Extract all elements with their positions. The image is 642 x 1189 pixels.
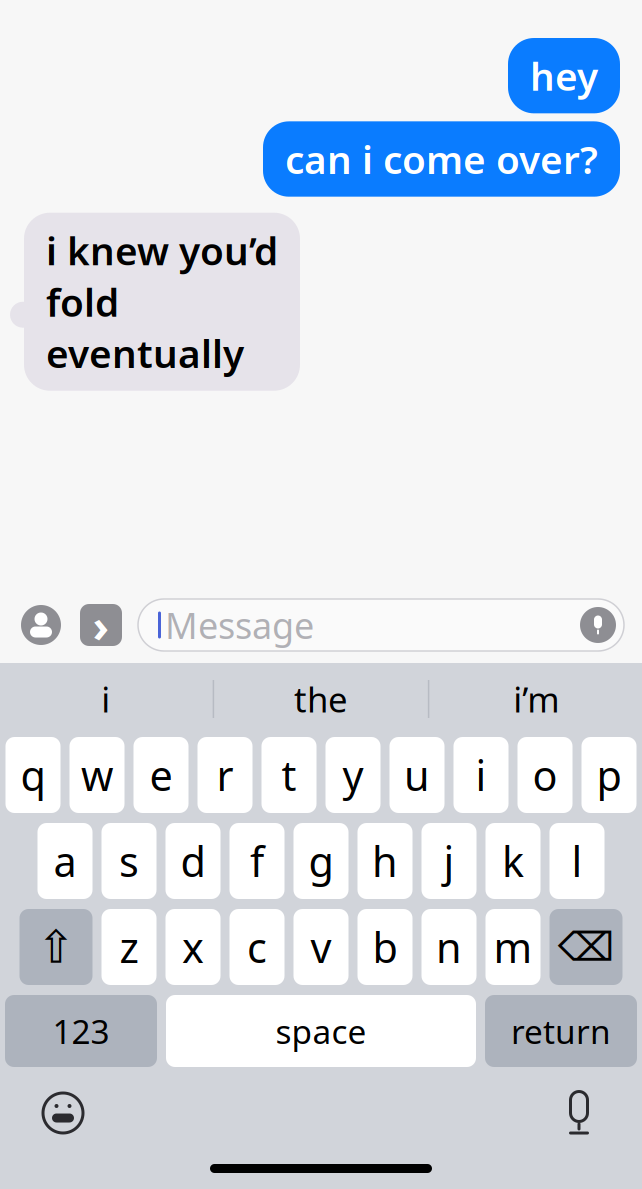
button[interactable]: i [0, 663, 213, 735]
staticText: z [119, 920, 138, 974]
staticText: u [404, 748, 430, 802]
staticText: › [92, 595, 109, 655]
staticText: l [571, 834, 582, 888]
button[interactable]: t [261, 737, 316, 813]
staticText: return [511, 1009, 611, 1053]
staticText: x [182, 920, 204, 974]
staticText: c [247, 920, 267, 974]
button[interactable]: r [197, 737, 252, 813]
staticText: g [308, 834, 333, 888]
staticText: f [250, 834, 264, 888]
staticText: t [281, 748, 296, 802]
button[interactable]: Apps [78, 599, 124, 651]
button[interactable]: m [485, 909, 540, 985]
staticText: j [443, 834, 454, 888]
staticText: i’m [513, 676, 559, 722]
button[interactable]: space [166, 995, 476, 1067]
button[interactable]: g [293, 823, 348, 899]
button[interactable]: Message field [138, 599, 624, 651]
button[interactable]: n [421, 909, 476, 985]
staticText: b [372, 920, 397, 974]
button[interactable]: i [453, 737, 508, 813]
staticText: 123 [52, 1009, 109, 1053]
staticText: the [294, 676, 348, 722]
staticText: a [53, 834, 76, 888]
button[interactable]: Emoji [31, 1081, 95, 1145]
staticText: i knew you’d fold eventually [46, 225, 278, 379]
button[interactable]: p [581, 737, 636, 813]
button[interactable]: k [485, 823, 540, 899]
button[interactable]: Delete [549, 909, 622, 985]
button[interactable]: q [5, 737, 60, 813]
staticText: hey [530, 50, 598, 101]
staticText: d [180, 834, 205, 888]
staticText: o [532, 748, 557, 802]
button[interactable]: 123 [5, 995, 157, 1067]
button[interactable]: s [101, 823, 156, 899]
staticText: can i come over? [285, 133, 598, 185]
button[interactable]: j [421, 823, 476, 899]
button[interactable]: b [357, 909, 412, 985]
button[interactable]: e [133, 737, 188, 813]
button[interactable]: c [229, 909, 284, 985]
staticText: n [436, 920, 462, 974]
staticText: ⌫ [557, 924, 614, 970]
staticText: m [493, 920, 532, 974]
button[interactable]: d [165, 823, 220, 899]
button[interactable]: Dictation [547, 1081, 611, 1145]
staticText: w [81, 748, 113, 802]
staticText: ⇧ [37, 921, 75, 973]
button[interactable]: w [69, 737, 124, 813]
button[interactable]: the [214, 663, 428, 735]
button[interactable]: z [101, 909, 156, 985]
staticText: k [502, 834, 524, 888]
staticText: p [596, 748, 621, 802]
button[interactable]: v [293, 909, 348, 985]
staticText: h [372, 834, 398, 888]
button[interactable]: Shift [19, 909, 92, 985]
button[interactable]: u [389, 737, 444, 813]
button[interactable]: x [165, 909, 220, 985]
button[interactable]: return [485, 995, 637, 1067]
button[interactable]: l [549, 823, 604, 899]
button[interactable]: o [517, 737, 572, 813]
staticText: y [342, 748, 363, 802]
button[interactable]: h [357, 823, 412, 899]
button[interactable]: y [325, 737, 380, 813]
button[interactable]: a [37, 823, 92, 899]
staticText: i [475, 748, 486, 802]
staticText: Message [165, 601, 314, 649]
staticText: e [149, 748, 172, 802]
staticText: s [119, 834, 139, 888]
staticText: v [310, 920, 331, 974]
staticText: r [216, 748, 233, 802]
staticText: i [101, 676, 110, 722]
button[interactable]: f [229, 823, 284, 899]
button[interactable]: i’m [429, 663, 642, 735]
staticText: q [20, 748, 45, 802]
staticText: space [275, 1009, 366, 1053]
button[interactable]: Camera [18, 599, 64, 651]
